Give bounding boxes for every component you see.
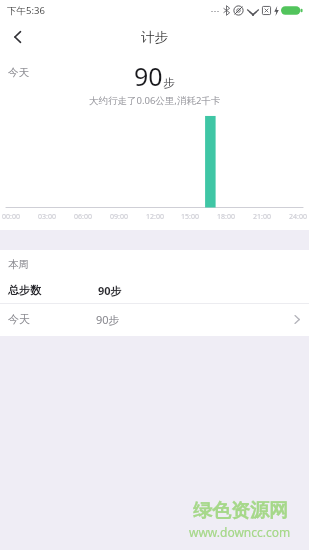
staticText: 大约行走了0.06公里,消耗2千卡 bbox=[89, 94, 221, 107]
button[interactable]: 总步数 bbox=[0, 277, 309, 303]
staticText: 21:00 bbox=[253, 212, 271, 222]
staticText: 00:00 bbox=[2, 212, 20, 222]
staticText: 90步 bbox=[96, 312, 120, 327]
staticText: 90步 bbox=[98, 283, 122, 298]
staticText: 下午5:36 bbox=[7, 4, 45, 17]
staticText: 步 bbox=[163, 76, 175, 90]
staticText: 绿色资源网 bbox=[193, 499, 288, 523]
staticText: 06:00 bbox=[74, 212, 92, 222]
staticText: 计步 bbox=[141, 29, 168, 46]
staticText: 本周 bbox=[8, 258, 29, 271]
staticText: 09:00 bbox=[110, 212, 128, 222]
staticText: 总步数 bbox=[8, 283, 41, 297]
staticText: 15:00 bbox=[181, 212, 199, 222]
staticText: 今天 bbox=[8, 312, 30, 326]
staticText: 24:00 bbox=[289, 212, 307, 222]
staticText: 今天 bbox=[8, 66, 29, 79]
button[interactable]: 今天 bbox=[0, 304, 309, 334]
staticText: 90 bbox=[134, 59, 163, 93]
staticText: www.downcc.com bbox=[189, 524, 291, 540]
button[interactable]: Back bbox=[0, 20, 36, 54]
staticText: 18:00 bbox=[217, 212, 235, 222]
staticText: 03:00 bbox=[38, 212, 56, 222]
staticText: 12:00 bbox=[146, 212, 164, 222]
